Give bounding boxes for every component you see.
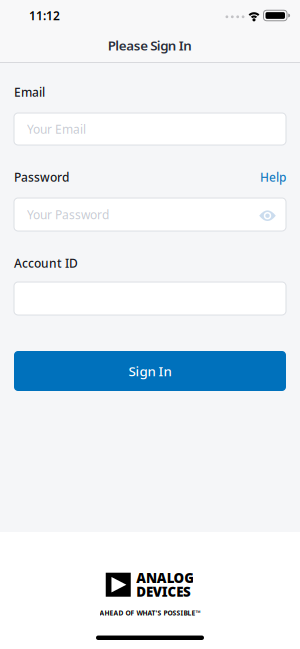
staticText: AHEAD OF WHAT'S POSSIBLE™ xyxy=(99,608,200,617)
staticText: Email xyxy=(14,84,45,100)
button[interactable]: Show Password xyxy=(259,208,286,220)
staticText: Please Sign In xyxy=(108,36,192,54)
staticText: Password xyxy=(14,169,69,185)
staticText: 11:12 xyxy=(29,7,60,23)
staticText: Your Password xyxy=(27,206,109,222)
staticText: DEVICES xyxy=(136,583,191,600)
button[interactable]: Your Email xyxy=(14,113,286,145)
button[interactable]: Help xyxy=(260,169,286,185)
staticText: Sign In xyxy=(128,362,171,380)
button[interactable]: Account ID xyxy=(14,282,286,315)
staticText: ANALOG xyxy=(136,569,194,587)
button[interactable]: Sign In xyxy=(14,351,286,391)
staticText: Help xyxy=(260,169,286,185)
button[interactable]: Your Password xyxy=(14,198,286,231)
staticText: Your Email xyxy=(27,121,86,137)
staticText: Account ID xyxy=(14,255,78,271)
